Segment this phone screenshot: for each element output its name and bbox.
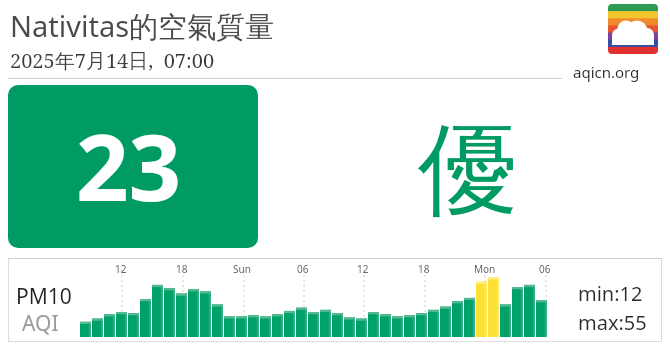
staticText: 23 <box>76 103 182 228</box>
staticText: 18 <box>176 262 188 276</box>
staticText: min:12 <box>578 280 643 307</box>
staticText: 2025年7月14日, 07:00 <box>10 47 215 74</box>
staticText: 12 <box>357 262 369 276</box>
staticText: Nativitas的空氣質量 <box>10 6 275 46</box>
staticText: Mon <box>474 262 496 276</box>
staticText: 06 <box>539 262 551 276</box>
staticText: PM10 <box>16 282 72 311</box>
staticText: 12 <box>115 262 127 276</box>
staticText: 06 <box>297 262 309 276</box>
staticText: 18 <box>418 262 430 276</box>
staticText: max:55 <box>578 309 647 336</box>
button[interactable]: aqicn.org logo <box>608 4 658 54</box>
staticText: Sun <box>233 262 251 276</box>
staticText: AQI <box>22 309 59 338</box>
staticText: aqicn.org <box>573 62 640 82</box>
button[interactable]: 23 <box>8 85 258 248</box>
staticText: 優 <box>418 108 518 234</box>
